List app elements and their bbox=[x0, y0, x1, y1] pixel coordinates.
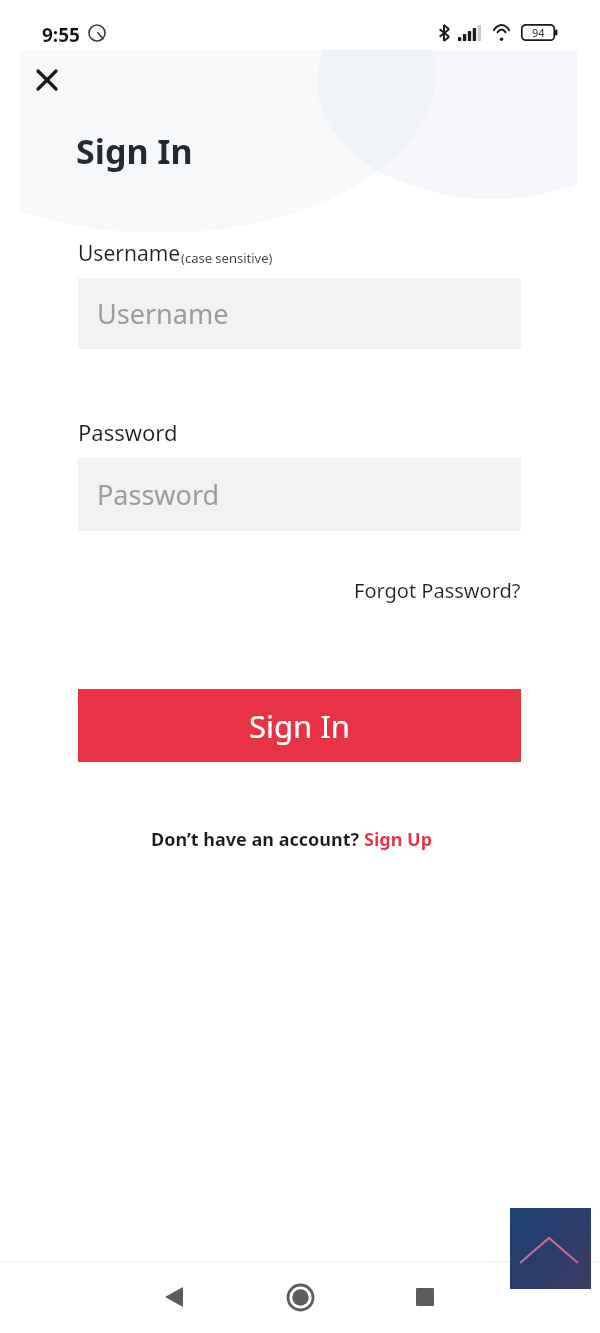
staticText: 94 bbox=[532, 25, 545, 40]
staticText: Username bbox=[97, 295, 229, 332]
button[interactable]: Recent apps bbox=[397, 1269, 453, 1325]
button[interactable]: Floating overlay bbox=[510, 1208, 591, 1289]
button[interactable]: Sign Up bbox=[364, 827, 433, 852]
button[interactable]: Back bbox=[146, 1269, 202, 1325]
staticText: Username bbox=[78, 239, 181, 268]
button[interactable]: Password bbox=[78, 458, 521, 531]
button[interactable]: Home bbox=[272, 1269, 328, 1325]
staticText: Don’t have an account? bbox=[151, 827, 364, 852]
button[interactable]: Username bbox=[78, 278, 521, 349]
button[interactable]: Forgot Password? bbox=[354, 577, 521, 604]
staticText: Password bbox=[78, 417, 178, 447]
staticText: Password bbox=[97, 476, 220, 513]
staticText: Sign In bbox=[76, 128, 193, 174]
staticText: 9:55 bbox=[42, 22, 80, 48]
staticText: Sign In bbox=[249, 705, 350, 747]
button[interactable]: Sign In bbox=[78, 689, 521, 762]
button[interactable]: Close bbox=[24, 58, 69, 103]
staticText: (case sensitive) bbox=[181, 249, 273, 267]
